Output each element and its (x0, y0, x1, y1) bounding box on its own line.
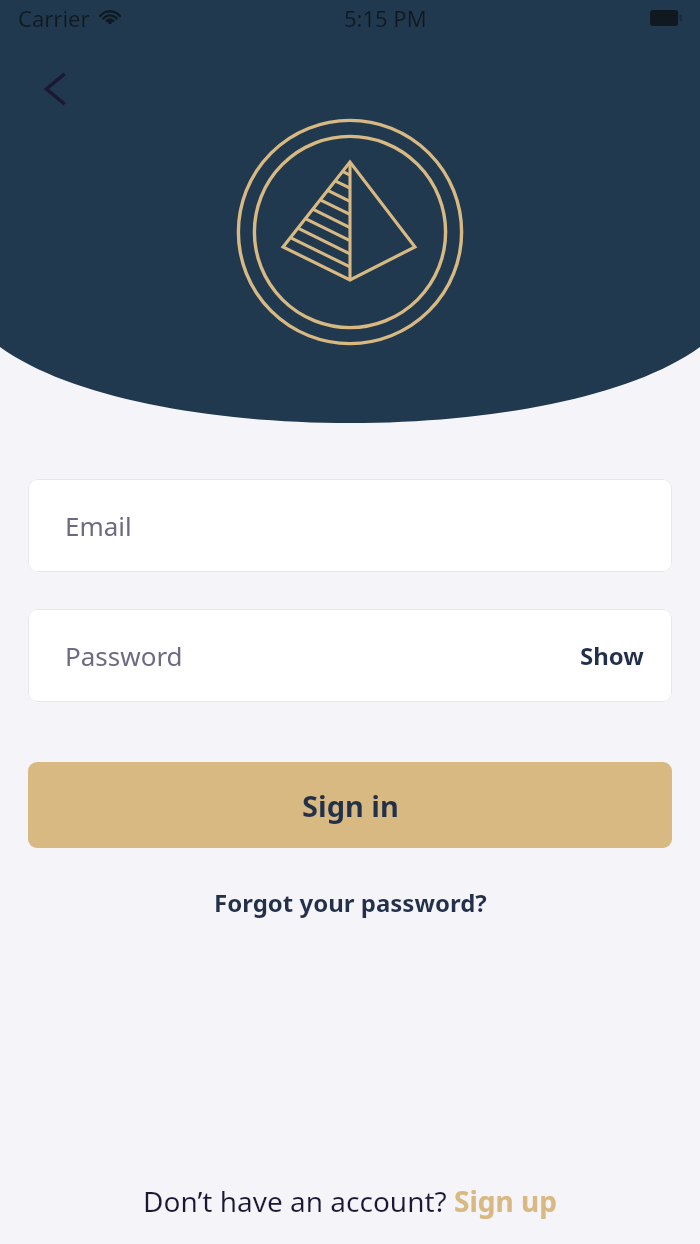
button[interactable]: Password (28, 609, 672, 702)
staticText: Sign in (302, 786, 399, 825)
staticText: Password (65, 638, 183, 673)
button[interactable]: Forgot your password? (202, 878, 499, 927)
staticText: Forgot your password? (214, 886, 487, 919)
staticText: 5:15 PM (344, 3, 427, 33)
button[interactable]: Don’t have an account? Sign up (127, 1176, 573, 1226)
staticText: Email (65, 508, 132, 543)
button[interactable]: Email (28, 479, 672, 572)
staticText: Don’t have an account? Sign up (143, 1182, 557, 1220)
staticText: Carrier (18, 3, 90, 33)
button[interactable]: Show (576, 635, 648, 676)
staticText: Show (580, 639, 644, 672)
button[interactable]: Sign in (28, 762, 672, 848)
button[interactable]: Back (28, 62, 82, 116)
